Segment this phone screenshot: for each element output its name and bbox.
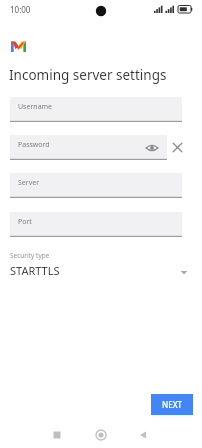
staticText: Security type: [10, 251, 50, 260]
staticText: Server: [18, 178, 40, 188]
button[interactable]: Home: [95, 429, 107, 441]
button[interactable]: Back: [138, 430, 148, 440]
staticText: Password: [18, 140, 50, 150]
button[interactable]: Security type: [10, 251, 192, 281]
staticText: Incoming server settings: [9, 66, 167, 84]
button[interactable]: Show password: [145, 141, 159, 155]
staticText: Username: [18, 102, 53, 112]
button[interactable]: Recents: [52, 430, 62, 440]
button[interactable]: Password: [10, 135, 167, 160]
button[interactable]: Server: [10, 173, 182, 198]
button[interactable]: Clear: [171, 141, 184, 154]
button[interactable]: Username: [10, 97, 182, 122]
staticText: 10:00: [10, 4, 31, 15]
staticText: NEXT: [162, 399, 183, 410]
button[interactable]: NEXT: [151, 394, 193, 415]
staticText: STARTTLS: [10, 263, 60, 278]
button[interactable]: Port: [10, 212, 182, 237]
staticText: Port: [18, 217, 32, 227]
